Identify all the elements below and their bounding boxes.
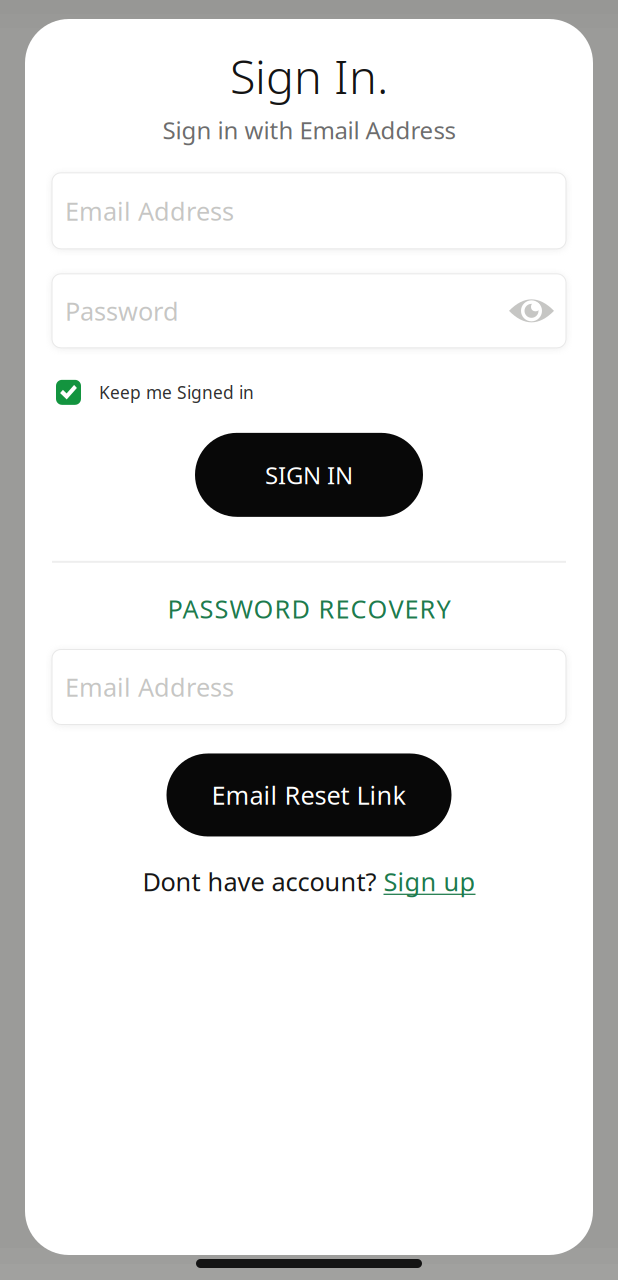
- button[interactable]: Email Reset Link: [166, 753, 451, 836]
- staticText: Keep me Signed in: [99, 381, 254, 404]
- button[interactable]: Sign up: [383, 864, 475, 898]
- button[interactable]: Email Address: [52, 649, 566, 724]
- button[interactable]: SIGN IN: [195, 433, 423, 517]
- staticText: Sign in with Email Address: [162, 114, 455, 146]
- staticText: PASSWORD RECOVERY: [167, 592, 450, 625]
- staticText: Sign up: [383, 864, 475, 898]
- staticText: Sign In.: [230, 45, 388, 107]
- staticText: Email Address: [65, 194, 234, 228]
- staticText: Password: [65, 294, 179, 328]
- staticText: Dont have account?: [142, 864, 383, 898]
- staticText: Email Reset Link: [211, 778, 406, 812]
- button[interactable]: Email Address: [52, 173, 566, 249]
- button[interactable]: Password: [52, 274, 566, 348]
- button[interactable]: Show password: [509, 300, 554, 322]
- staticText: Email Address: [65, 670, 234, 704]
- staticText: SIGN IN: [265, 459, 353, 491]
- button[interactable]: Keep me Signed in: [52, 380, 566, 405]
